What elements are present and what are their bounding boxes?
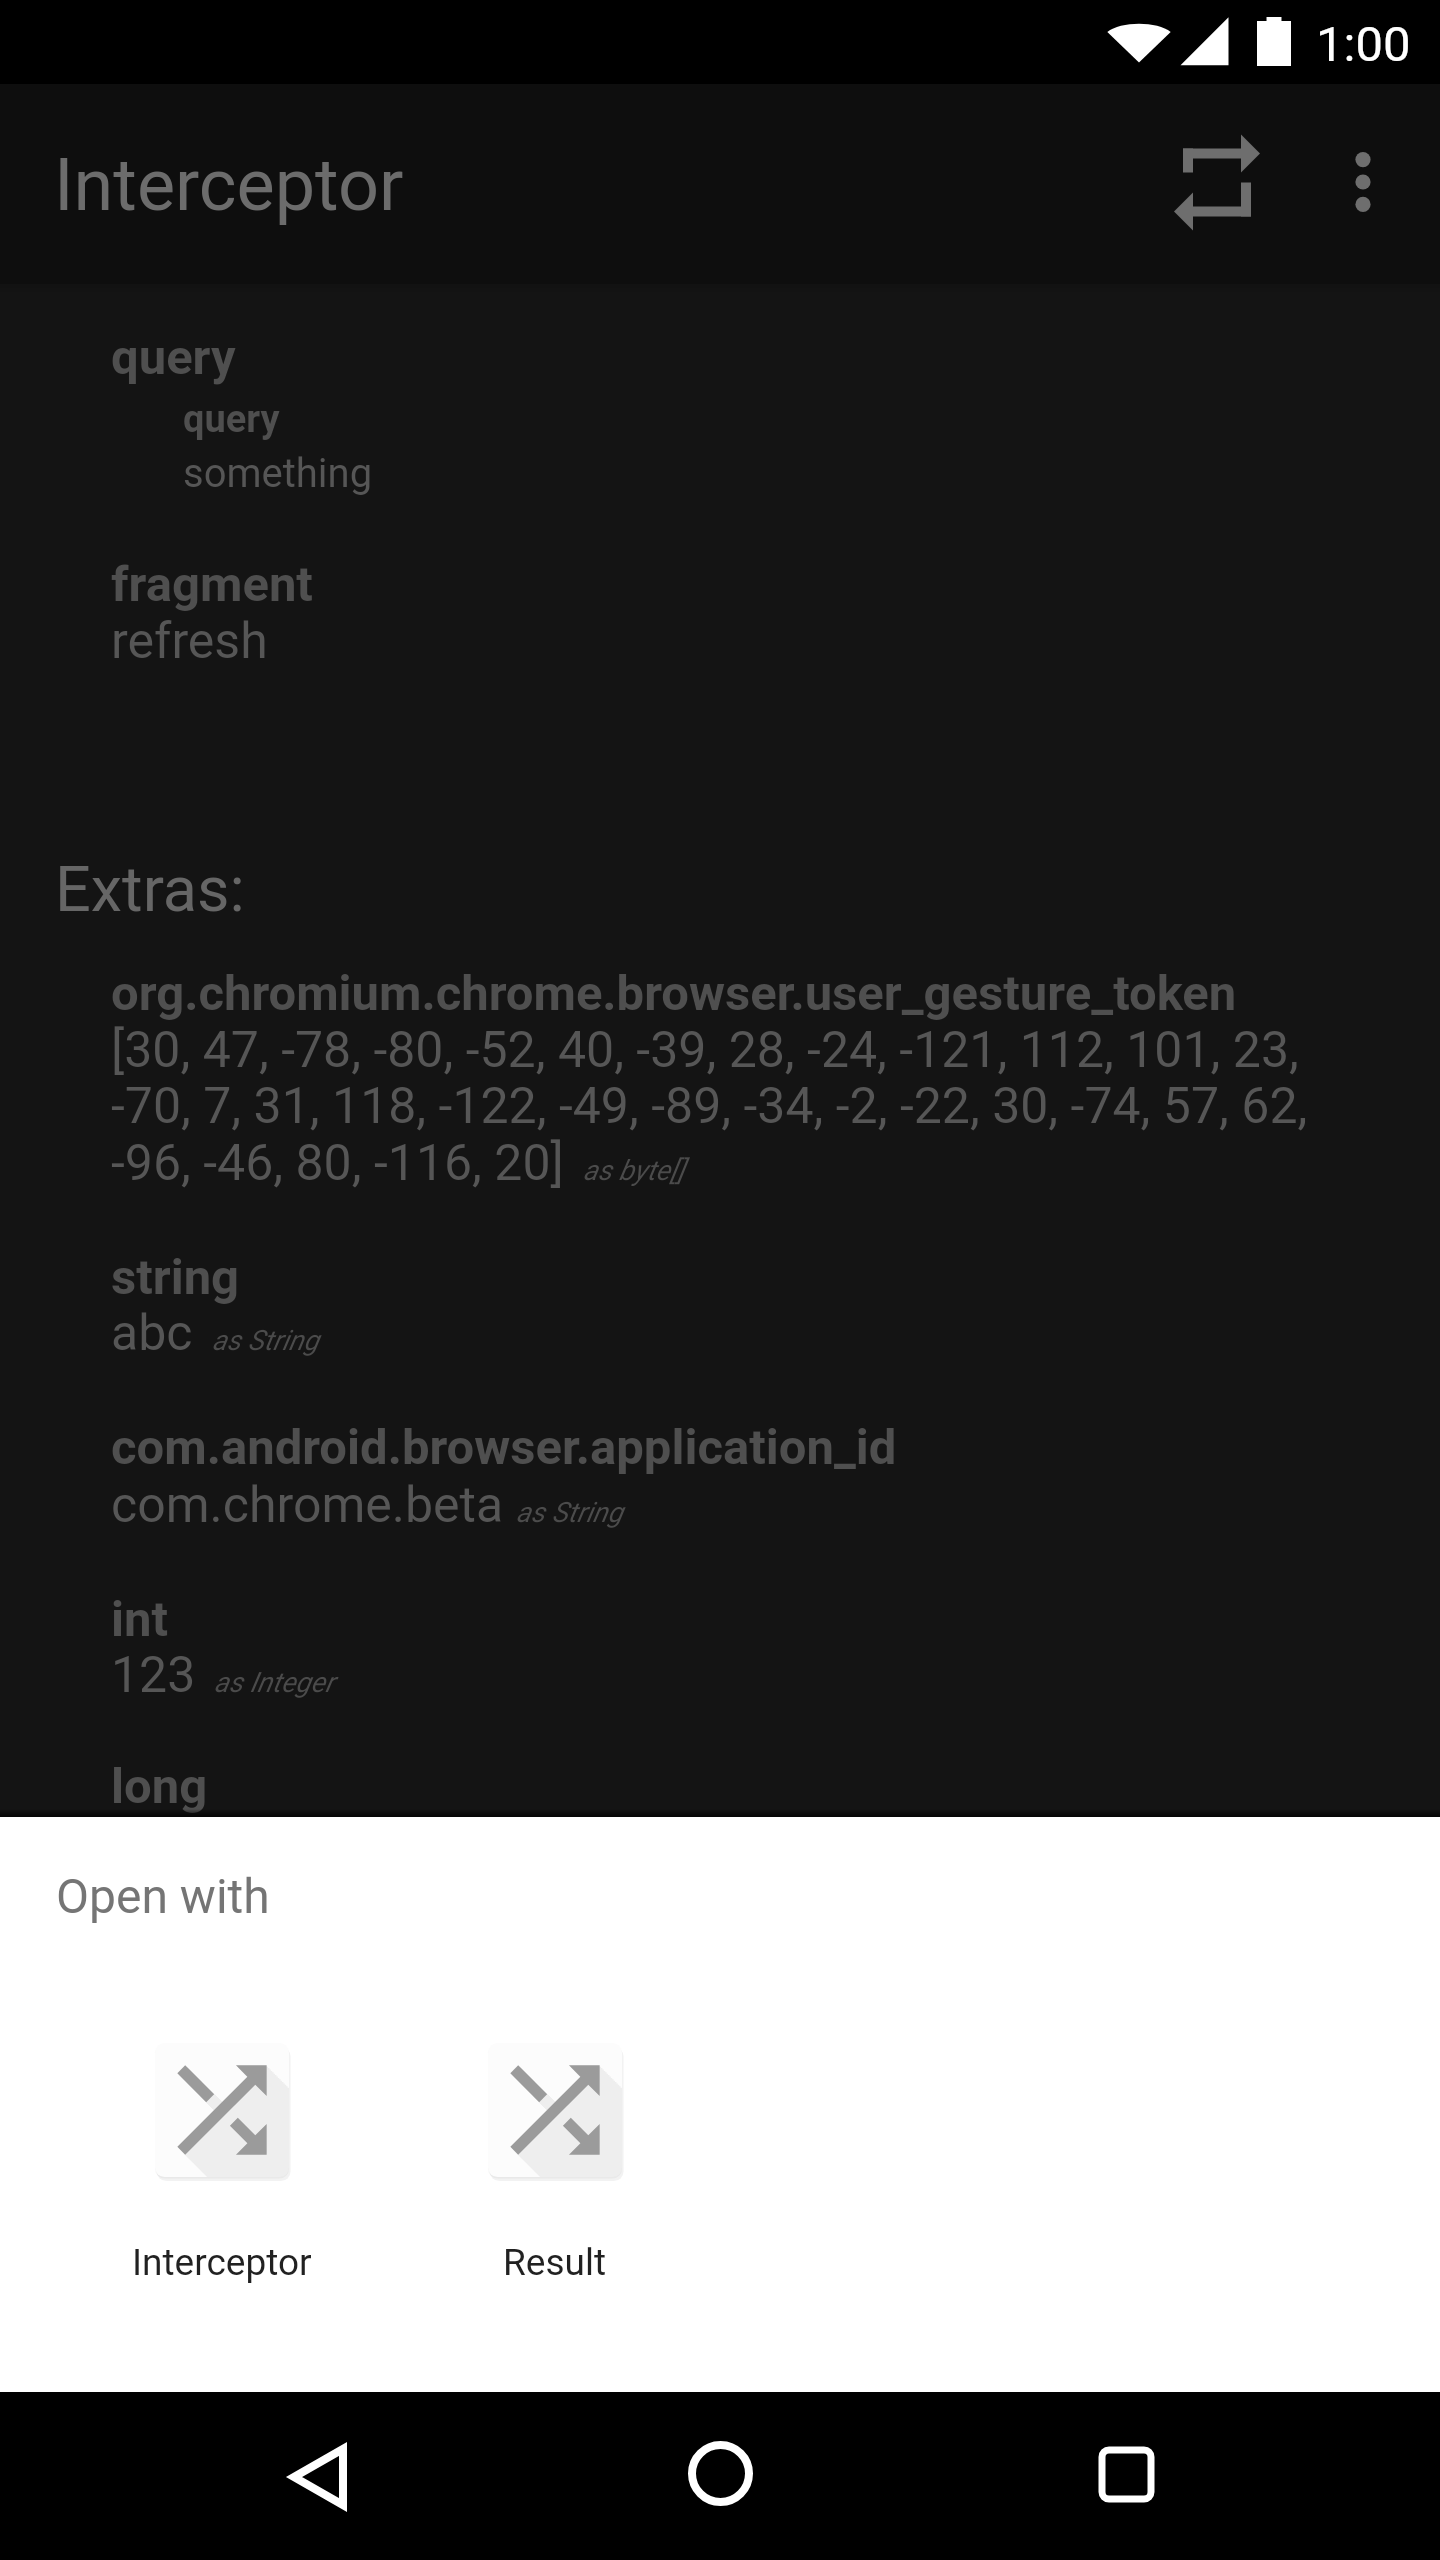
staticText: Extras:: [55, 853, 245, 927]
staticText: fragment: [111, 556, 313, 613]
staticText: int: [111, 1591, 168, 1648]
staticText: [30, 47, -78, -80, -52, 40, -39, 28, -24…: [111, 1021, 1299, 1080]
staticText: as byte[]: [583, 1154, 685, 1187]
staticText: -70, 7, 31, 118, -122, -49, -89, -34, -2…: [111, 1077, 1308, 1136]
staticText: query: [111, 329, 236, 386]
button[interactable]: Recent apps: [1046, 2390, 1206, 2558]
staticText: com.android.browser.application_id: [111, 1419, 897, 1476]
staticText: 123: [111, 1646, 196, 1705]
button[interactable]: [0, 320, 1440, 500]
staticText: something: [183, 450, 373, 497]
button[interactable]: [0, 1585, 1440, 1700]
button[interactable]: [0, 1415, 1440, 1530]
staticText: long: [111, 1758, 208, 1815]
button[interactable]: Result: [388, 2003, 722, 2303]
staticText: Result: [503, 2241, 607, 2284]
staticText: Interceptor: [54, 143, 404, 227]
staticText: refresh: [111, 612, 268, 671]
staticText: query: [183, 397, 280, 442]
staticText: as Integer: [214, 1666, 335, 1699]
staticText: org.chromium.chrome.browser.user_gesture…: [111, 965, 1237, 1022]
button[interactable]: More options: [1289, 84, 1437, 280]
button[interactable]: [0, 550, 1440, 670]
button[interactable]: Interceptor: [55, 2003, 389, 2303]
button[interactable]: Home: [640, 2389, 800, 2557]
button[interactable]: Back: [238, 2393, 398, 2560]
button[interactable]: [0, 1755, 1440, 1815]
staticText: 1:00: [1316, 16, 1411, 73]
staticText: com.chrome.beta: [111, 1476, 504, 1535]
staticText: as String: [212, 1324, 319, 1357]
button[interactable]: Repeat: [1144, 84, 1292, 280]
staticText: abc: [111, 1304, 193, 1363]
button[interactable]: [0, 960, 1440, 1190]
staticText: Interceptor: [132, 2241, 312, 2284]
staticText: as String: [516, 1496, 623, 1529]
button[interactable]: [0, 1245, 1440, 1360]
staticText: string: [111, 1249, 240, 1306]
staticText: -96, -46, 80, -116, 20]: [111, 1134, 564, 1193]
staticText: Open with: [56, 1868, 270, 1924]
